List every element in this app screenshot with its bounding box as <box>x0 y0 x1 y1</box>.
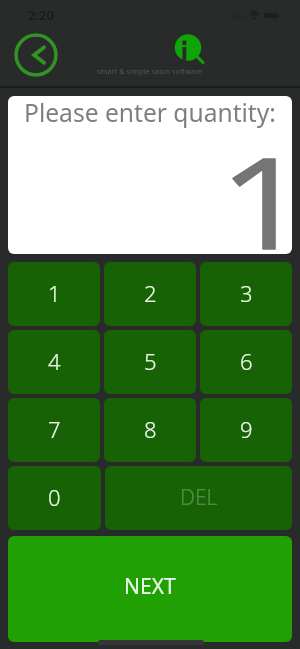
button[interactable]: DEL <box>105 466 292 530</box>
button[interactable]: 2 <box>104 262 196 326</box>
button[interactable]: 4 <box>8 330 100 394</box>
staticText: 3 <box>240 278 253 308</box>
staticText: Please enter quantity: <box>24 96 276 130</box>
button[interactable]: Back <box>14 33 58 77</box>
staticText: 6 <box>240 346 253 376</box>
staticText: 2:20 <box>28 6 54 24</box>
button[interactable]: 0 <box>8 466 101 530</box>
button[interactable]: 9 <box>200 398 292 462</box>
staticText: 1 <box>48 278 61 308</box>
button[interactable]: 5 <box>104 330 196 394</box>
button[interactable]: 7 <box>8 398 100 462</box>
staticText: 0 <box>48 482 61 512</box>
staticText: 7 <box>48 414 61 444</box>
staticText: 9 <box>240 414 253 444</box>
button[interactable]: 8 <box>104 398 196 462</box>
staticText: 4 <box>48 346 61 376</box>
staticText: NEXT <box>124 572 176 601</box>
staticText: DEL <box>180 483 218 512</box>
button[interactable]: 3 <box>200 262 292 326</box>
staticText: 5 <box>144 346 157 376</box>
button[interactable]: NEXT <box>8 536 292 642</box>
staticText: 8 <box>144 414 157 444</box>
button[interactable]: 1 <box>8 262 100 326</box>
button[interactable]: 6 <box>200 330 292 394</box>
staticText: 2 <box>144 278 157 308</box>
staticText: smart & simple salon software <box>97 66 203 76</box>
